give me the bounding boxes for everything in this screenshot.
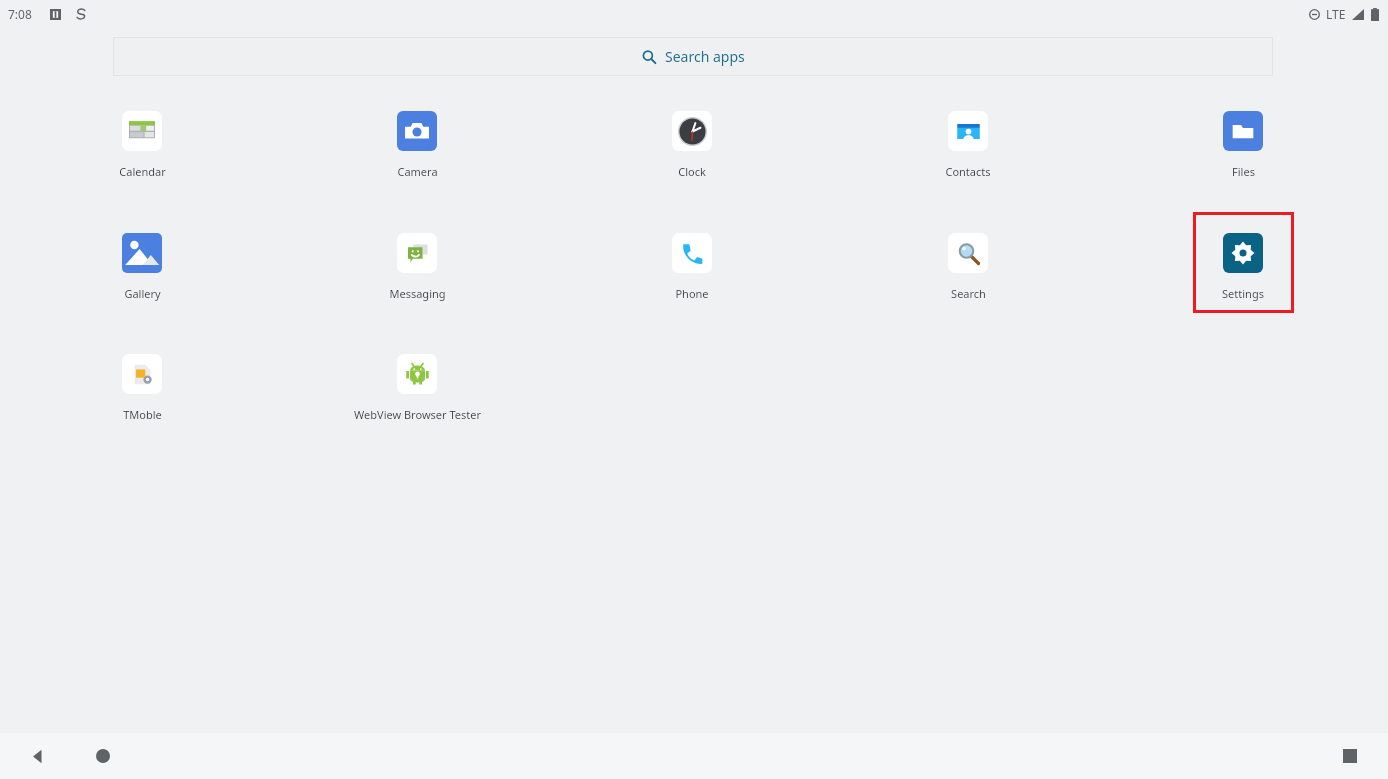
- staticText: Search: [951, 286, 986, 301]
- staticText: 7:08: [8, 6, 32, 22]
- staticText: Gallery: [124, 286, 161, 301]
- staticText: Camera: [397, 164, 438, 179]
- staticText: Settings: [1222, 286, 1264, 301]
- button[interactable]: Calendar: [67, 106, 217, 183]
- staticText: TMoble: [123, 407, 162, 422]
- staticText: Phone: [675, 286, 709, 301]
- button[interactable]: Clock: [617, 106, 767, 183]
- button[interactable]: Phone: [617, 228, 767, 305]
- button[interactable]: Files: [1168, 106, 1318, 183]
- button[interactable]: WebView Browser Tester: [342, 349, 492, 426]
- staticText: Files: [1232, 164, 1255, 179]
- button[interactable]: Recent apps: [1330, 736, 1370, 776]
- staticText: LTE: [1326, 6, 1346, 22]
- staticText: Calendar: [119, 164, 166, 179]
- button[interactable]: TMoble: [67, 349, 217, 426]
- staticText: Messaging: [389, 286, 446, 301]
- button[interactable]: Contacts: [893, 106, 1043, 183]
- staticText: Contacts: [945, 164, 991, 179]
- staticText: Search apps: [665, 47, 745, 66]
- button[interactable]: Home: [83, 736, 123, 776]
- button[interactable]: Gallery: [67, 228, 217, 305]
- button[interactable]: Settings: [1168, 228, 1318, 305]
- button[interactable]: Messaging: [342, 228, 492, 305]
- staticText: Clock: [678, 164, 706, 179]
- button[interactable]: Camera: [342, 106, 492, 183]
- button[interactable]: Search apps: [113, 37, 1273, 76]
- button[interactable]: Search: [893, 228, 1043, 305]
- button[interactable]: Back: [18, 736, 58, 776]
- staticText: WebView Browser Tester: [354, 407, 481, 422]
